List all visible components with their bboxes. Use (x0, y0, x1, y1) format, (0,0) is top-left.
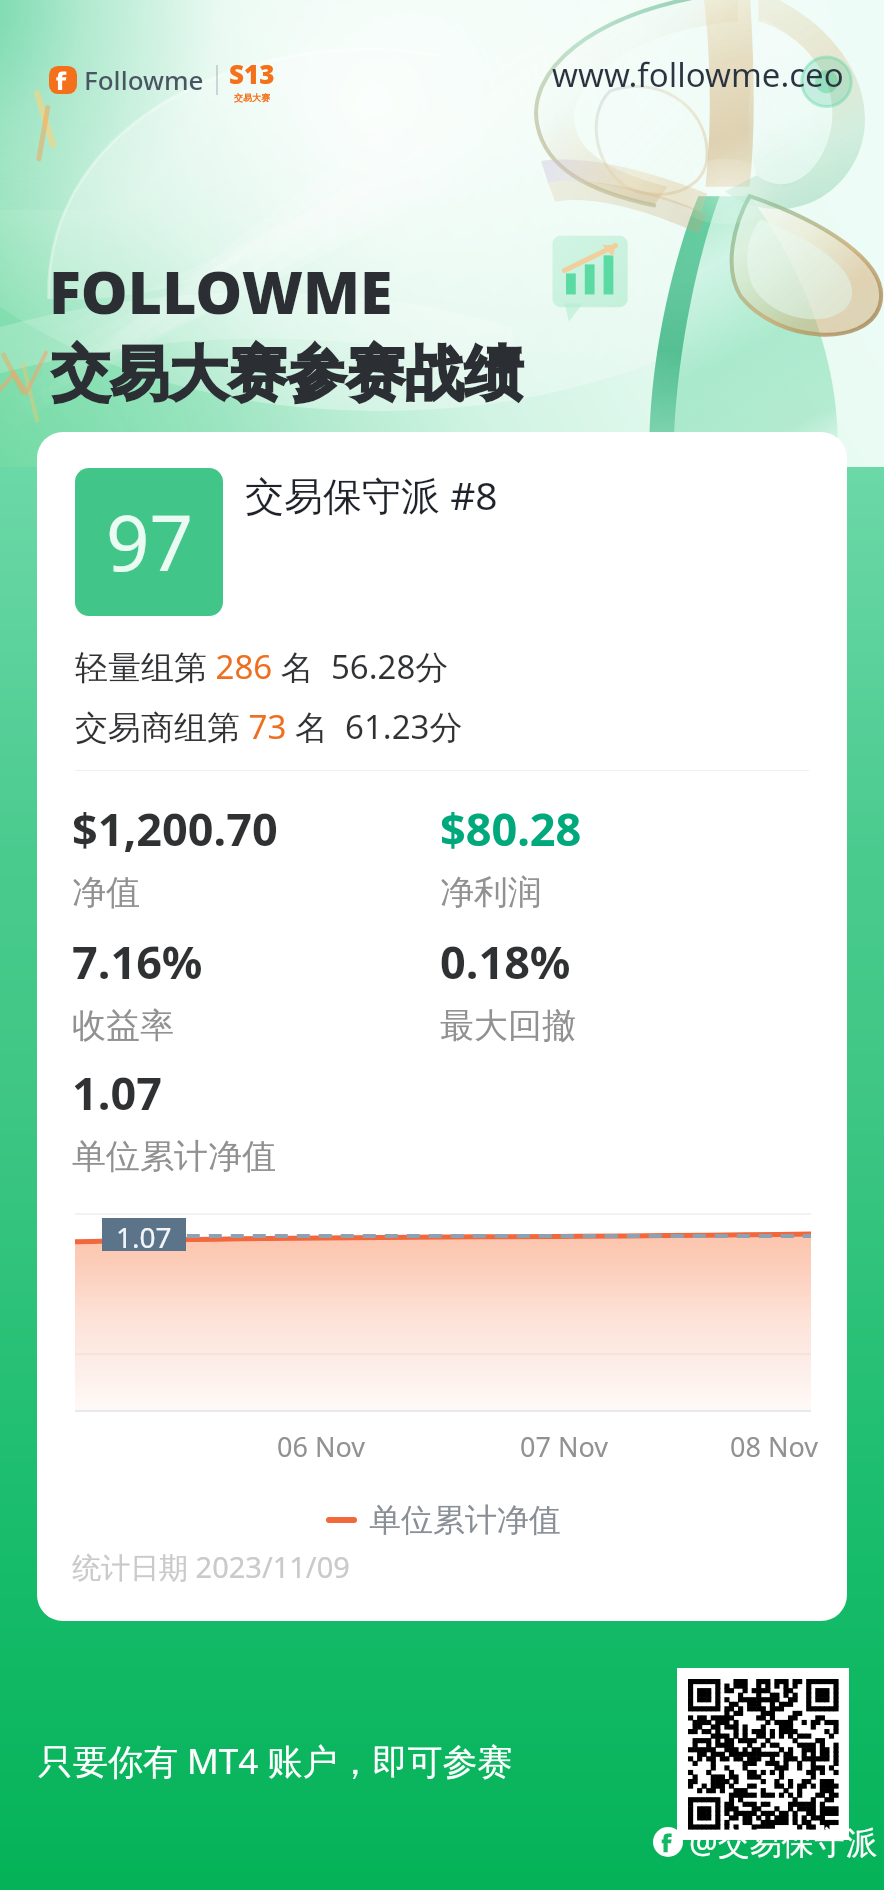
button[interactable]: Followme (49, 56, 275, 103)
staticText: 08 Nov (730, 1428, 818, 1465)
staticText: 交易大赛参赛战绩 (51, 337, 523, 411)
staticText: 单位累计净值 (369, 1500, 561, 1540)
staticText: 轻量组第 286 名 56.28分 (75, 644, 449, 689)
staticText: FOLLOWME (49, 251, 393, 331)
staticText: 交易大赛 (234, 92, 270, 103)
staticText: $80.28 (440, 798, 582, 859)
button[interactable]: www.followme.ceo (546, 48, 850, 101)
staticText: 1.07 (72, 1062, 162, 1123)
staticText: 1.07 (116, 1218, 172, 1251)
staticText: 07 Nov (520, 1428, 608, 1465)
staticText: Followme (84, 62, 204, 97)
staticText: @交易保守派 (689, 1820, 878, 1864)
staticText: 0.18% (440, 931, 571, 992)
staticText: 净利润 (440, 871, 542, 914)
staticText: 单位累计净值 (72, 1135, 276, 1178)
button[interactable]: QR code (677, 1668, 849, 1840)
button[interactable]: Score 97 (75, 468, 223, 616)
staticText: 最大回撤 (440, 1004, 576, 1047)
staticText: 97 (106, 490, 193, 594)
button[interactable]: 单位累计净值 (326, 1500, 561, 1540)
staticText: $1,200.70 (72, 798, 278, 859)
button[interactable]: 交易保守派 #8 (239, 462, 508, 527)
button[interactable]: 只要你有 MT4 账户，即可参赛 (32, 1731, 519, 1791)
staticText: 7.16% (72, 931, 203, 992)
staticText: 收益率 (72, 1004, 174, 1047)
staticText: S13 (229, 56, 275, 91)
button[interactable]: @交易保守派 (653, 1820, 878, 1864)
staticText: 净值 (72, 871, 140, 914)
staticText: 统计日期 2023/11/09 (72, 1547, 350, 1587)
staticText: 06 Nov (277, 1428, 365, 1465)
staticText: 交易商组第 73 名 61.23分 (75, 704, 463, 749)
